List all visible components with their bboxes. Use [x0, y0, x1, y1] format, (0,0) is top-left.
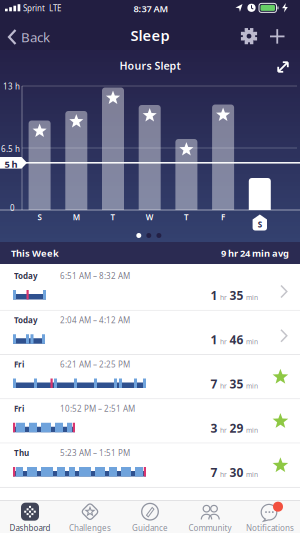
staticText: S — [258, 219, 262, 230]
button[interactable]: Today — [0, 311, 300, 355]
staticText: 5 h — [4, 158, 17, 170]
staticText: 6:51 AM – 8:32 AM — [60, 270, 130, 281]
button[interactable]: Challenges — [60, 502, 120, 533]
staticText: Hours Slept — [119, 58, 180, 73]
staticText: Today — [14, 270, 38, 281]
staticText: Back — [21, 28, 50, 46]
button[interactable]: Fri — [0, 355, 300, 399]
button[interactable]: Dashboard — [0, 502, 60, 533]
staticText: min — [246, 337, 258, 346]
staticText: Community — [188, 523, 231, 533]
staticText: hr — [220, 293, 227, 302]
staticText: Thu — [14, 447, 29, 458]
staticText: 7 — [210, 464, 217, 480]
button[interactable]: Add — [266, 25, 289, 48]
staticText: Challenges — [69, 523, 111, 533]
staticText: min — [246, 382, 258, 390]
staticText: hr — [220, 337, 227, 346]
staticText: 35 — [229, 287, 243, 303]
staticText: Fri — [14, 403, 24, 414]
button[interactable]: Fri — [0, 399, 300, 443]
button[interactable]: Community — [180, 502, 240, 533]
staticText: min — [246, 426, 258, 435]
staticText: M — [73, 212, 80, 222]
staticText: F — [221, 212, 225, 222]
staticText: 8:37 AM — [133, 2, 168, 15]
staticText: 6.5 h — [1, 143, 20, 154]
staticText: 46 — [229, 332, 243, 348]
staticText: Sleep — [130, 26, 169, 45]
staticText: 35 — [229, 376, 243, 392]
button[interactable]: Guidance — [120, 502, 180, 533]
staticText: 3 — [210, 420, 217, 436]
staticText: W — [146, 212, 154, 222]
staticText: T — [184, 212, 189, 222]
staticText: Notifications — [246, 523, 294, 533]
staticText: 1 — [210, 332, 217, 348]
button[interactable]: Today — [0, 266, 300, 311]
staticText: 9 hr 24 min avg — [221, 247, 289, 259]
staticText: 1 — [210, 287, 217, 303]
staticText: hr — [220, 382, 227, 390]
button[interactable]: Settings — [236, 23, 262, 49]
staticText: 5:23 AM – 1:51 PM — [60, 447, 130, 458]
button[interactable]: Expand chart — [272, 56, 294, 78]
staticText: Today — [14, 315, 38, 325]
staticText: 30 — [229, 464, 243, 480]
staticText: 29 — [229, 420, 243, 436]
staticText: 7 — [210, 376, 217, 392]
button[interactable]: Thu — [0, 443, 300, 488]
staticText: min — [246, 470, 258, 479]
staticText: Sprint LTE — [23, 3, 61, 13]
staticText: 0 — [10, 202, 15, 213]
staticText: hr — [220, 470, 227, 479]
staticText: min — [246, 293, 258, 302]
button[interactable]: Notifications — [240, 502, 300, 533]
staticText: 6:21 AM – 2:25 PM — [60, 359, 130, 370]
button[interactable]: Back — [0, 20, 56, 50]
staticText: 13 h — [3, 81, 20, 92]
staticText: T — [110, 212, 115, 222]
staticText: Dashboard — [9, 523, 50, 533]
staticText: S — [38, 212, 42, 222]
staticText: hr — [220, 426, 227, 435]
staticText: 2:04 AM – 4:12 AM — [60, 315, 130, 325]
staticText: 10:52 PM – 2:51 AM — [60, 403, 135, 414]
staticText: Guidance — [132, 523, 168, 533]
staticText: This Week — [11, 247, 59, 259]
staticText: Fri — [14, 359, 24, 370]
